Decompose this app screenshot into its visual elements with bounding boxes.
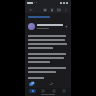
button[interactable]: Back (27, 6, 34, 13)
button[interactable]: Chat (38, 88, 47, 94)
button[interactable]: Spaces (49, 88, 58, 94)
button[interactable]: Star (65, 25, 68, 28)
button[interactable]: Mail (28, 88, 37, 94)
button[interactable]: Meet (59, 88, 68, 94)
button[interactable]: More options (62, 6, 69, 13)
button[interactable]: Star (28, 23, 68, 30)
button[interactable]: Mark unread (55, 6, 62, 13)
button[interactable]: Reply (29, 81, 35, 87)
button[interactable]: Delete (48, 6, 55, 13)
button[interactable]: Archive (41, 6, 48, 13)
button[interactable]: Forward (48, 81, 54, 87)
